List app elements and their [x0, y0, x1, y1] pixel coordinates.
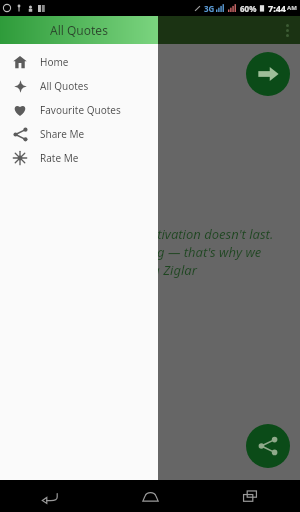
button[interactable]: Favourite Quotes [0, 98, 158, 122]
staticText: All Quotes [50, 22, 108, 38]
staticText: Home [40, 55, 69, 69]
staticText: 7:44 [268, 2, 286, 14]
staticText: 60% [240, 3, 257, 14]
staticText: AM [287, 4, 297, 12]
staticText: People often say that motivation doesn't… [14, 225, 286, 279]
button[interactable]: More options [274, 16, 300, 44]
button[interactable]: Rate Me [0, 146, 158, 170]
button[interactable]: Share quote [246, 424, 290, 468]
button[interactable]: Back [0, 480, 100, 512]
staticText: Favourite Quotes [40, 103, 121, 117]
button[interactable]: Share Me [0, 122, 158, 146]
button[interactable]: Recent apps [200, 480, 300, 512]
staticText: Rate Me [40, 151, 79, 165]
button[interactable]: Home [0, 50, 158, 74]
staticText: 3G [204, 3, 215, 14]
button[interactable]: Home [100, 480, 200, 512]
staticText: Share Me [40, 127, 85, 141]
staticText: All Quotes [40, 79, 89, 93]
staticText: Quote 22 [14, 58, 71, 76]
button[interactable]: Next quote [246, 52, 290, 96]
button[interactable]: All Quotes [0, 74, 158, 98]
